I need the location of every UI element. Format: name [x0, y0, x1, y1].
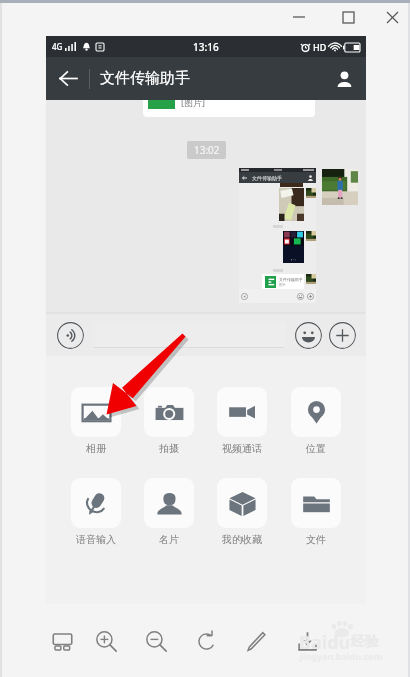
- button[interactable]: Zoom out: [140, 625, 172, 657]
- staticText: 4G: [52, 41, 63, 52]
- staticText: 图片: [279, 283, 286, 287]
- button[interactable]: Rotate: [190, 625, 222, 657]
- staticText: 文件: [306, 533, 326, 546]
- button[interactable]: Emoji: [294, 321, 322, 349]
- button[interactable]: [92, 321, 286, 348]
- staticText: 文件传输助手: [252, 175, 282, 181]
- button[interactable]: Voice input: [56, 321, 84, 349]
- staticText: 13:02: [194, 143, 220, 157]
- button[interactable]: 我的收藏: [205, 478, 279, 546]
- staticText: 经验: [351, 633, 379, 651]
- button[interactable]: 文件: [279, 478, 353, 546]
- staticText: HD: [313, 41, 327, 53]
- button[interactable]: Minimize: [281, 4, 317, 30]
- button[interactable]: 拍摄: [132, 387, 205, 455]
- button[interactable]: 位置: [279, 387, 353, 455]
- button[interactable]: Maximize: [330, 4, 366, 30]
- button[interactable]: 相册: [59, 387, 132, 455]
- staticText: jingyan.baidu.com: [300, 650, 383, 662]
- staticText: 我的收藏: [222, 533, 262, 546]
- staticText: 相册: [86, 442, 106, 455]
- staticText: 13:16: [193, 40, 219, 54]
- button[interactable]: Edit: [240, 625, 272, 657]
- button[interactable]: 名片: [132, 478, 205, 546]
- button[interactable]: Zoom in: [90, 625, 122, 657]
- staticText: 文件传输助手: [279, 277, 303, 282]
- button[interactable]: Back: [46, 57, 89, 100]
- staticText: 视频通话: [222, 442, 262, 455]
- button[interactable]: Contact info: [322, 57, 366, 100]
- staticText: 位置: [306, 442, 326, 455]
- button[interactable]: Fit to window: [46, 625, 78, 657]
- button[interactable]: Save: [291, 625, 323, 657]
- staticText: [图片]: [181, 100, 205, 108]
- staticText: 文件传输助手: [100, 69, 190, 88]
- button[interactable]: 语音输入: [59, 478, 132, 546]
- button[interactable]: Close: [374, 4, 410, 30]
- button[interactable]: More: [328, 321, 356, 349]
- staticText: 语音输入: [76, 533, 116, 546]
- staticText: 名片: [159, 533, 179, 546]
- button[interactable]: 视频通话: [205, 387, 279, 455]
- staticText: Baidu: [299, 630, 351, 655]
- staticText: 拍摄: [159, 442, 179, 455]
